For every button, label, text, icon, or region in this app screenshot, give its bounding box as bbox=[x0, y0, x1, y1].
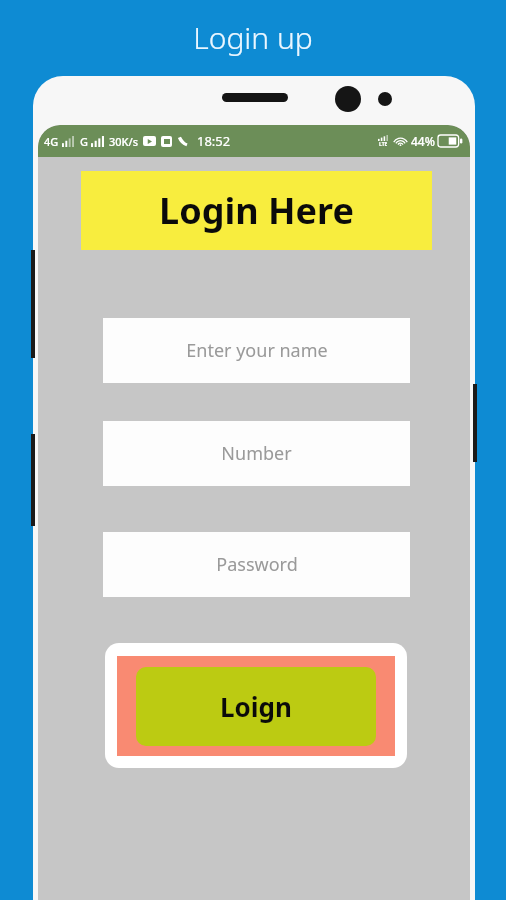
staticText: Number bbox=[221, 441, 292, 466]
button[interactable]: Password bbox=[103, 532, 410, 597]
staticText: 4G bbox=[44, 134, 59, 149]
staticText: 18:52 bbox=[197, 132, 231, 150]
button[interactable]: Loign bbox=[105, 643, 407, 768]
staticText: 30K/s bbox=[109, 134, 139, 149]
staticText: 44% bbox=[411, 133, 435, 149]
button[interactable]: Login Here bbox=[81, 171, 432, 250]
staticText: Login Here bbox=[159, 186, 354, 235]
button[interactable]: Number bbox=[103, 421, 410, 486]
button[interactable]: Enter your name bbox=[103, 318, 410, 383]
staticText: Enter your name bbox=[186, 338, 328, 363]
staticText: G bbox=[80, 134, 88, 149]
staticText: Loign bbox=[220, 689, 292, 724]
staticText: Password bbox=[216, 552, 298, 577]
staticText: LTE bbox=[379, 141, 388, 148]
staticText: Login up bbox=[193, 17, 313, 58]
